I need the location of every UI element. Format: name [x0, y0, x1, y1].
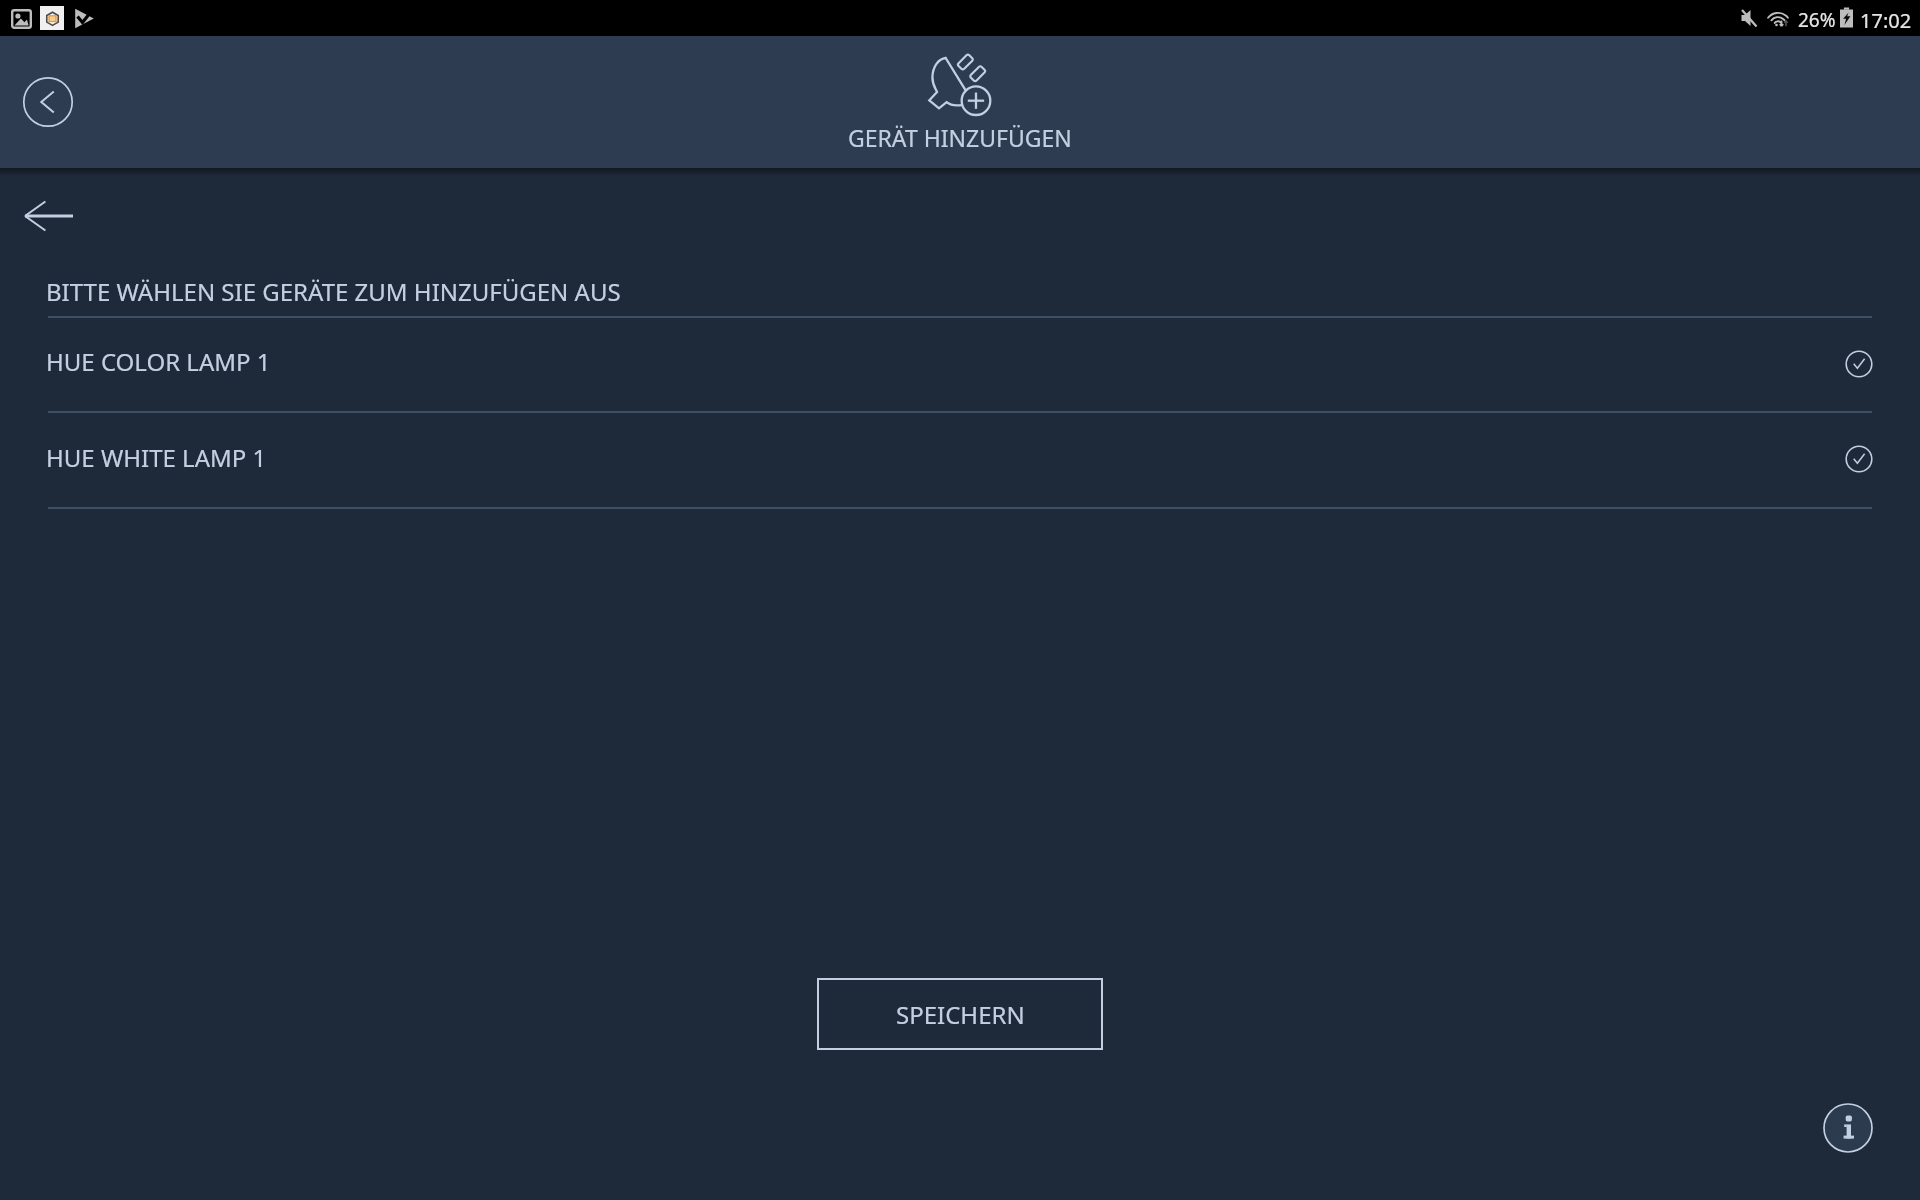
- button[interactable]: Back: [14, 68, 82, 136]
- button[interactable]: HUE WHITE LAMP 1: [0, 411, 1920, 507]
- staticText: 26%: [1798, 7, 1836, 33]
- button[interactable]: SPEICHERN: [817, 978, 1103, 1050]
- button[interactable]: HUE COLOR LAMP 1: [0, 316, 1920, 411]
- staticText: GERÄT HINZUFÜGEN: [848, 122, 1072, 153]
- button[interactable]: Info: [1820, 1100, 1876, 1156]
- staticText: BITTE WÄHLEN SIE GERÄTE ZUM HINZUFÜGEN A…: [46, 275, 621, 308]
- staticText: SPEICHERN: [896, 998, 1025, 1031]
- staticText: HUE WHITE LAMP 1: [46, 441, 267, 474]
- staticText: HUE COLOR LAMP 1: [46, 345, 271, 378]
- button[interactable]: Back: [13, 188, 89, 244]
- staticText: 17:02: [1860, 7, 1912, 34]
